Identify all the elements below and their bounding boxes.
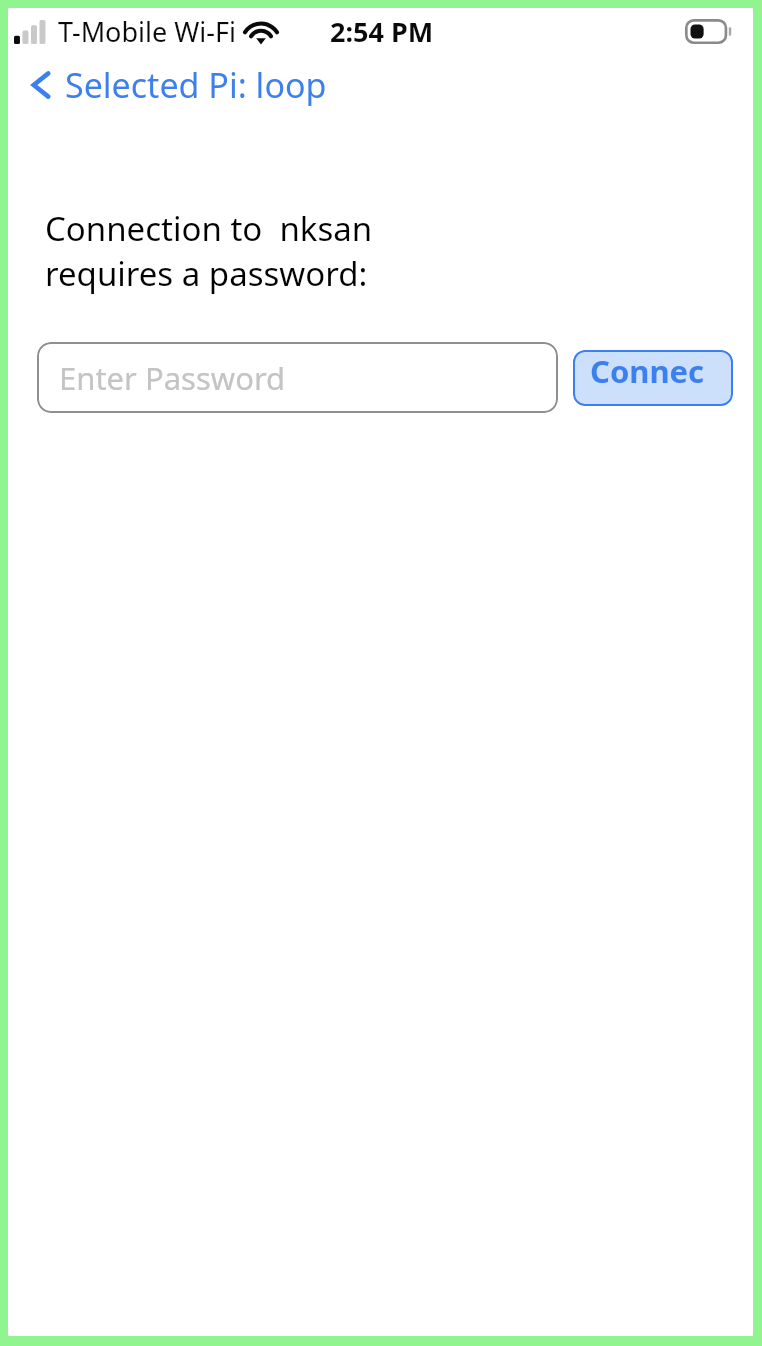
staticText: Enter Password [59,357,286,399]
staticText: Connect [590,350,716,406]
button[interactable]: Enter Password [37,342,558,413]
button[interactable]: Connect [573,350,733,406]
staticText: 2:54 PM [330,13,434,50]
staticText: requires a password: [45,251,368,296]
staticText: T-Mobile Wi-Fi [58,13,236,50]
button[interactable]: Selected Pi: loop [28,54,341,118]
staticText: Connection to nksan [45,206,373,251]
staticText: Selected Pi: loop [65,62,327,108]
